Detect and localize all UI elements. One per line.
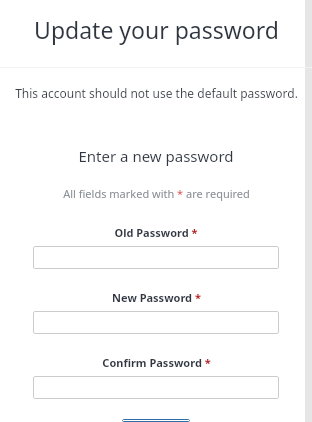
button[interactable]: Old Password — [33, 246, 279, 269]
staticText: Enter a new password — [78, 146, 234, 166]
staticText: All fields marked with * are required — [63, 186, 250, 201]
button[interactable]: Update — [122, 419, 190, 422]
staticText: Old Password * — [114, 225, 198, 240]
staticText: This account should not use the default … — [15, 85, 298, 101]
button[interactable]: Confirm Password — [33, 376, 279, 399]
staticText: Update your password — [34, 14, 279, 45]
staticText: Confirm Password * — [102, 355, 211, 370]
button[interactable]: New Password — [33, 311, 279, 334]
staticText: New Password * — [112, 290, 201, 305]
